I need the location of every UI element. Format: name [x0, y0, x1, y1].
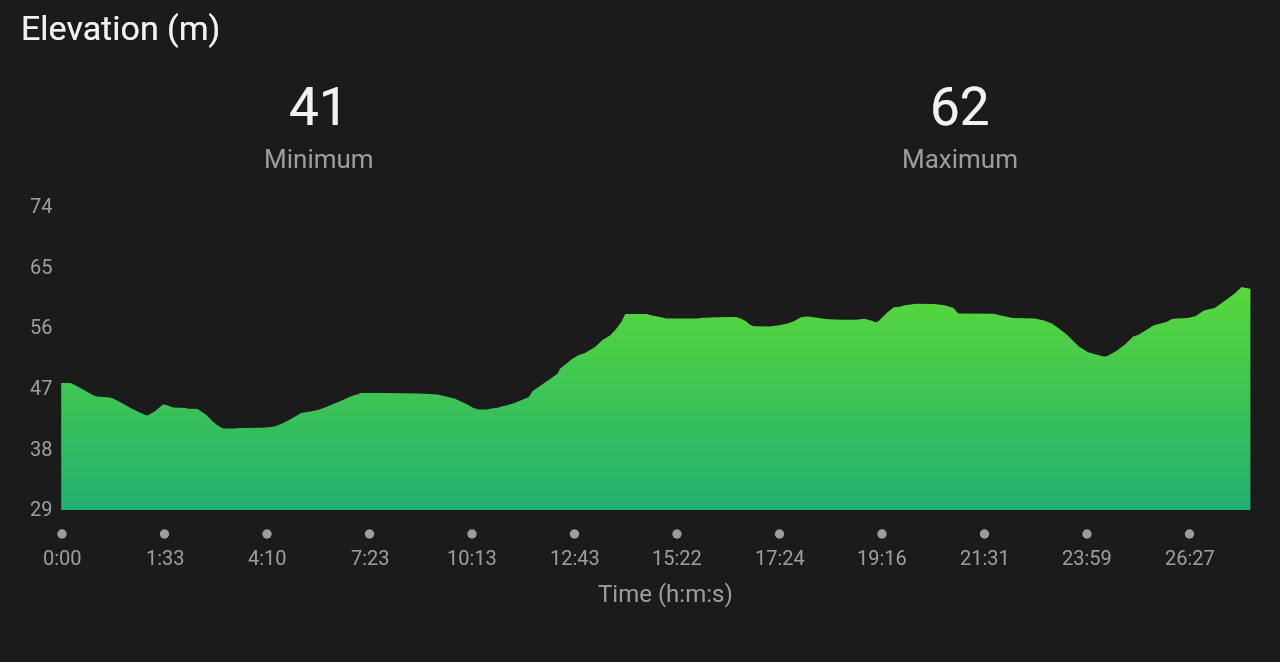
staticText: Maximum — [902, 144, 1018, 174]
button[interactable]: 41 — [236, 76, 402, 174]
staticText: 19:16 — [857, 546, 907, 569]
staticText: 26:27 — [1165, 546, 1215, 569]
button[interactable]: 62 — [877, 76, 1043, 174]
staticText: 23:59 — [1062, 546, 1112, 569]
staticText: 12:43 — [550, 546, 600, 569]
staticText: 41 — [289, 76, 349, 138]
staticText: 47 — [30, 376, 53, 399]
button[interactable]: Elevation (m) — [21, 8, 221, 48]
staticText: 15:22 — [652, 546, 702, 569]
button[interactable]: Time (h:m:s) — [598, 580, 733, 608]
button[interactable]: Elevation profile chart — [61, 200, 1251, 511]
staticText: 62 — [930, 76, 990, 138]
staticText: 21:31 — [960, 546, 1010, 569]
staticText: 17:24 — [755, 546, 805, 569]
staticText: Time (h:m:s) — [598, 580, 733, 608]
staticText: Elevation (m) — [21, 8, 221, 48]
staticText: 10:13 — [447, 546, 497, 569]
staticText: 7:23 — [351, 546, 390, 569]
staticText: 1:33 — [146, 546, 185, 569]
staticText: 65 — [30, 255, 53, 278]
staticText: Minimum — [264, 144, 374, 174]
staticText: 38 — [30, 437, 53, 460]
staticText: 4:10 — [248, 546, 287, 569]
staticText: 74 — [30, 194, 53, 217]
staticText: 29 — [30, 497, 53, 520]
staticText: 0:00 — [43, 546, 82, 569]
staticText: 56 — [30, 315, 53, 338]
